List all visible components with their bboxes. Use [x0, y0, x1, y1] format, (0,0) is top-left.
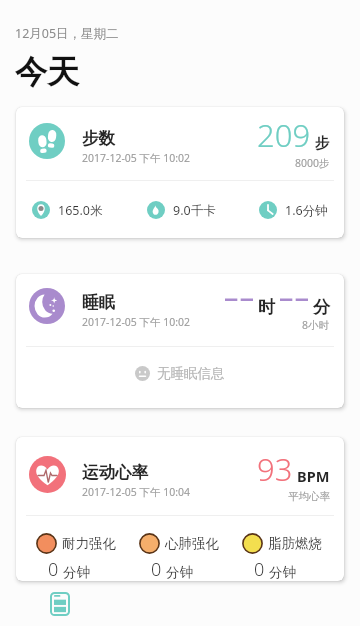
button[interactable]: 记录 — [0, 582, 120, 626]
staticText: 2017-12-05 下午 10:02 — [82, 315, 191, 329]
staticText: 2017-12-05 下午 10:04 — [82, 485, 191, 499]
staticText: 步数 — [82, 128, 115, 149]
staticText: 分钟 — [269, 564, 296, 581]
staticText: 时 — [258, 297, 275, 318]
staticText: 12月05日，星期二 — [15, 25, 119, 42]
button[interactable]: 脂肪燃烧 — [242, 533, 322, 581]
staticText: 8000步 — [295, 156, 330, 170]
button[interactable]: 1.6分钟 — [259, 201, 328, 219]
staticText: 9.0千卡 — [173, 202, 216, 219]
staticText: 分钟 — [166, 564, 193, 581]
staticText: 耐力强化 — [62, 535, 116, 552]
staticText: 0 — [151, 557, 162, 581]
staticText: 0 — [254, 557, 265, 581]
staticText: 209 — [257, 114, 311, 156]
button[interactable]: 运动心率 — [16, 437, 344, 581]
button[interactable]: 9.0千卡 — [147, 201, 216, 219]
button[interactable]: 睡眠 — [16, 274, 344, 408]
staticText: 心肺强化 — [165, 535, 219, 552]
staticText: 1.6分钟 — [285, 202, 328, 219]
button[interactable]: 心肺强化 — [139, 533, 219, 581]
staticText: 分钟 — [63, 564, 90, 581]
button[interactable]: 步数 — [16, 107, 344, 238]
staticText: 步 — [315, 134, 330, 152]
staticText: 运动心率 — [82, 462, 148, 483]
button[interactable]: 165.0米 — [32, 201, 103, 219]
staticText: 8小时 — [302, 318, 330, 332]
staticText: 165.0米 — [58, 202, 103, 219]
staticText: 睡眠 — [82, 292, 115, 313]
staticText: 93 — [257, 448, 293, 490]
staticText: 脂肪燃烧 — [268, 535, 322, 552]
staticText: 2017-12-05 下午 10:02 — [82, 151, 191, 165]
staticText: 今天 — [15, 52, 79, 92]
staticText: 0 — [48, 557, 59, 581]
staticText: BPM — [297, 466, 330, 486]
button[interactable]: 耐力强化 — [36, 533, 116, 581]
staticText: 无睡眠信息 — [157, 365, 225, 382]
staticText: 平均心率 — [288, 490, 330, 503]
staticText: 分 — [313, 297, 330, 318]
